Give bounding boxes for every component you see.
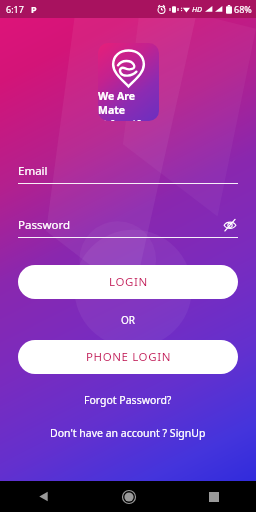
staticText: HD: [192, 4, 203, 14]
staticText: OR: [121, 313, 136, 327]
button[interactable]: Show password: [222, 217, 238, 233]
staticText: 68%: [234, 3, 252, 15]
button[interactable]: Password: [18, 217, 238, 238]
staticText: P: [31, 3, 37, 15]
button[interactable]: Back: [0, 481, 86, 512]
staticText: Email: [18, 163, 48, 179]
button[interactable]: PHONE LOGIN: [18, 340, 238, 374]
button[interactable]: Forgot Password?: [0, 390, 256, 410]
staticText: We Connect People: [99, 118, 158, 121]
staticText: We Are Mate: [98, 89, 159, 117]
button[interactable]: Recent apps: [171, 481, 256, 512]
staticText: Password: [18, 217, 71, 233]
button[interactable]: Home: [86, 481, 171, 512]
staticText: LOGIN: [109, 274, 148, 290]
staticText: PHONE LOGIN: [86, 349, 171, 365]
button[interactable]: LOGIN: [18, 265, 238, 299]
button[interactable]: Don't have an account ? SignUp: [0, 423, 256, 443]
staticText: Don't have an account ? SignUp: [50, 426, 206, 440]
staticText: Forgot Password?: [84, 393, 172, 407]
button[interactable]: Email: [18, 163, 238, 184]
staticText: 6:17: [6, 3, 24, 15]
